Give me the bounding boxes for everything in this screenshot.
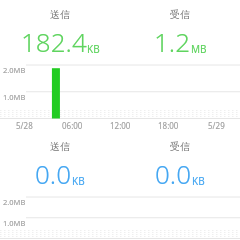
staticText: KB bbox=[87, 42, 100, 56]
staticText: 1.2 bbox=[154, 24, 191, 59]
staticText: 送信 bbox=[50, 140, 70, 153]
staticText: 0.0 bbox=[35, 156, 72, 191]
staticText: 18:00 bbox=[158, 120, 179, 131]
staticText: 12:00 bbox=[110, 120, 131, 131]
staticText: 182.4 bbox=[21, 24, 87, 59]
staticText: 06:00 bbox=[62, 120, 83, 131]
staticText: 5/28 bbox=[16, 120, 33, 131]
staticText: KB bbox=[72, 174, 85, 188]
staticText: 受信 bbox=[170, 140, 190, 153]
staticText: 1.0MB bbox=[3, 218, 26, 228]
staticText: 1.0MB bbox=[3, 92, 26, 102]
staticText: 受信 bbox=[170, 8, 190, 21]
button[interactable]: 送信 bbox=[0, 140, 240, 191]
staticText: 2.0MB bbox=[3, 65, 26, 75]
staticText: 送信 bbox=[50, 8, 70, 21]
button[interactable]: Mobile data usage chart bbox=[0, 64, 240, 120]
staticText: 0.0 bbox=[155, 156, 192, 191]
staticText: MB bbox=[191, 42, 207, 56]
button[interactable]: 送信 bbox=[0, 8, 240, 59]
staticText: 5/29 bbox=[208, 120, 225, 131]
staticText: KB bbox=[192, 174, 205, 188]
staticText: 2.0MB bbox=[3, 197, 26, 207]
button[interactable]: Wi-Fi data usage chart bbox=[0, 196, 240, 240]
